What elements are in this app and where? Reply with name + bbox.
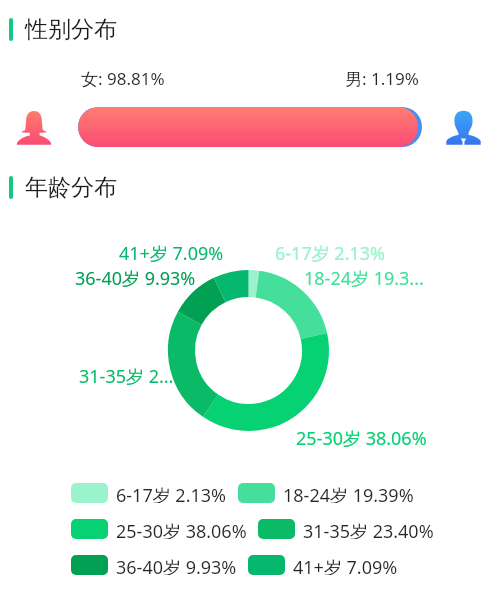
staticText: 31-35岁 2... <box>79 364 174 389</box>
staticText: 25-30岁 38.06% <box>116 519 247 539</box>
staticText: 25-30岁 38.06% <box>296 426 427 451</box>
staticText: 31-35岁 23.40% <box>303 519 434 539</box>
button[interactable]: 6-17岁 2.13% <box>71 483 227 503</box>
staticText: 41+岁 7.09% <box>119 241 224 266</box>
button[interactable]: 性别分布 <box>9 15 117 44</box>
button[interactable]: Female <box>16 109 52 146</box>
staticText: 18-24岁 19.39% <box>283 483 414 503</box>
staticText: 18-24岁 19.3... <box>304 266 424 291</box>
staticText: 36-40岁 9.93% <box>75 266 196 291</box>
staticText: 36-40岁 9.93% <box>116 555 237 575</box>
button[interactable]: 25-30岁 38.06% <box>71 519 247 539</box>
staticText: 性别分布 <box>25 15 117 44</box>
button[interactable]: 18-24岁 19.39% <box>238 483 414 503</box>
button[interactable]: 36-40岁 9.93% <box>71 555 237 575</box>
button[interactable]: 31-35岁 23.40% <box>258 519 434 539</box>
button[interactable] <box>78 107 422 147</box>
button[interactable]: 年龄分布 <box>9 173 117 202</box>
staticText: 41+岁 7.09% <box>293 555 398 575</box>
staticText: 6-17岁 2.13% <box>275 241 386 266</box>
staticText: 女: 98.81% <box>81 67 165 90</box>
button[interactable]: Male <box>445 109 482 146</box>
staticText: 6-17岁 2.13% <box>116 483 227 503</box>
staticText: 男: 1.19% <box>345 67 419 90</box>
staticText: 年龄分布 <box>25 173 117 202</box>
button[interactable]: 41+岁 7.09% <box>248 555 398 575</box>
